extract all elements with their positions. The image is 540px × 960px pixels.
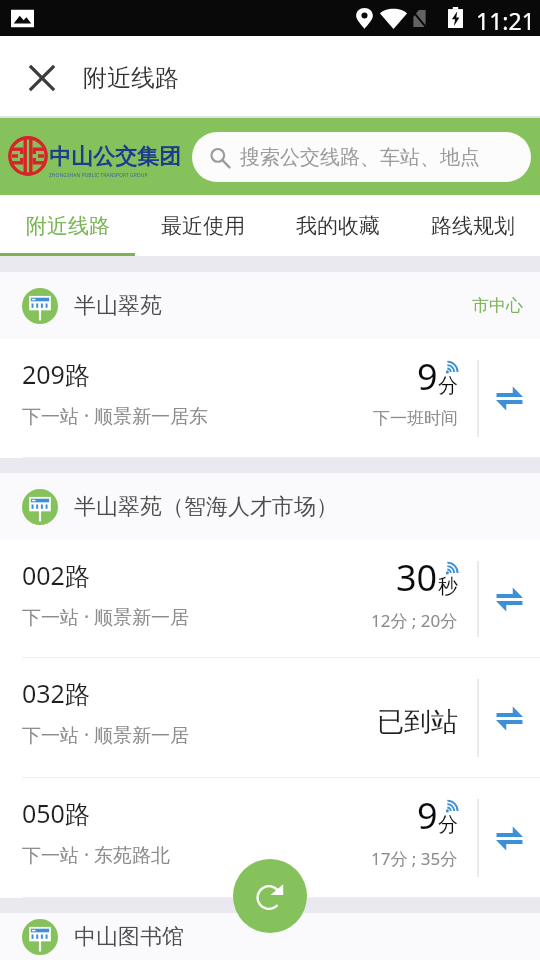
button[interactable]: 换向 <box>479 658 540 778</box>
staticText: 下一站 · 顺景新一居东 <box>22 403 208 429</box>
staticText: 最近使用 <box>161 213 245 239</box>
staticText: 秒 <box>438 574 458 599</box>
button[interactable]: 我的收藏 <box>270 195 405 256</box>
staticText: 半山翠苑 <box>74 292 162 320</box>
staticText: 我的收藏 <box>296 213 380 239</box>
staticText: 下一站 · 东苑路北 <box>22 842 170 868</box>
button[interactable]: 032路 <box>0 658 540 778</box>
button[interactable]: 换向 <box>479 778 540 898</box>
button[interactable]: 002路 <box>0 540 540 658</box>
staticText: 中山图书馆 <box>74 923 184 951</box>
staticText: 附近线路 <box>83 63 179 93</box>
staticText: 下一站 · 顺景新一居 <box>22 604 189 630</box>
button[interactable]: 050路 <box>0 778 540 898</box>
staticText: 半山翠苑（智海人才市场） <box>74 493 338 521</box>
staticText: 9 <box>417 352 438 401</box>
staticText: ZHONGSHAN PUBLIC TRANSPORT GROUP <box>49 172 148 179</box>
button[interactable]: 关闭 <box>20 56 64 100</box>
staticText: 搜索公交线路、车站、地点 <box>240 145 480 170</box>
staticText: 市中心 <box>472 295 523 316</box>
staticText: 11:21 <box>476 5 535 36</box>
staticText: 附近线路 <box>26 213 110 239</box>
button[interactable]: 换向 <box>479 540 540 658</box>
staticText: 209路 <box>22 357 90 391</box>
staticText: 下一班时间 <box>373 408 458 429</box>
staticText: 17分 ; 35分 <box>371 847 458 870</box>
button[interactable]: 中山图书馆 <box>0 913 540 960</box>
button[interactable]: 209路 <box>0 339 540 458</box>
button[interactable]: 附近线路 <box>0 195 135 256</box>
staticText: 9 <box>417 791 438 840</box>
staticText: 中山公交集团 <box>49 143 181 171</box>
staticText: 050路 <box>22 796 90 830</box>
staticText: 12分 ; 20分 <box>371 609 458 632</box>
staticText: 下一站 · 顺景新一居 <box>22 722 189 748</box>
button[interactable]: 路线规划 <box>405 195 540 256</box>
button[interactable]: 搜索公交线路、车站、地点 <box>192 132 531 182</box>
staticText: 分 <box>438 812 458 837</box>
button[interactable]: 刷新 <box>233 859 307 933</box>
staticText: 032路 <box>22 676 90 710</box>
button[interactable]: 换向 <box>479 339 540 458</box>
staticText: 已到站 <box>377 705 458 739</box>
staticText: 30 <box>396 553 438 602</box>
staticText: 路线规划 <box>431 213 515 239</box>
button[interactable]: 半山翠苑 <box>0 272 540 339</box>
button[interactable]: 最近使用 <box>135 195 270 256</box>
staticText: 分 <box>438 373 458 398</box>
staticText: 002路 <box>22 558 90 592</box>
button[interactable]: 半山翠苑（智海人才市场） <box>0 473 540 540</box>
